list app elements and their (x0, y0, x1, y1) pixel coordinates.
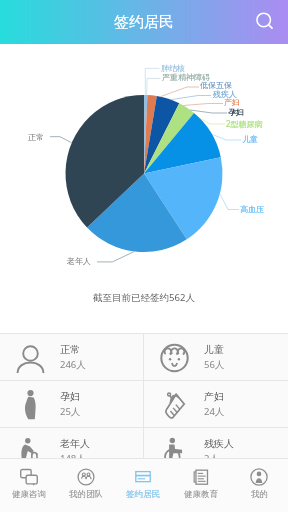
staticText: 低保五保 (200, 80, 232, 90)
staticText: 健康教育 (184, 489, 218, 500)
staticText: 24人 (204, 405, 225, 418)
staticText: 签约居民 (114, 13, 174, 32)
staticText: 健康咨询 (12, 489, 46, 500)
button[interactable]: 健康教育 (172, 459, 230, 512)
button[interactable]: 正常 (0, 334, 143, 380)
staticText: 老年人 (67, 256, 91, 266)
button[interactable]: 我的团队 (57, 459, 114, 512)
staticText: 正常 (60, 343, 80, 356)
button[interactable]: Search (252, 9, 278, 35)
button[interactable]: 签约居民 (114, 459, 172, 512)
staticText: 148人 (60, 452, 86, 458)
staticText: 高血压 (240, 204, 264, 214)
staticText: 老年人 (60, 437, 90, 450)
button[interactable]: 孕妇 (0, 381, 143, 427)
staticText: 246人 (60, 358, 86, 371)
staticText: 儿童 (204, 343, 224, 356)
staticText: 25人 (60, 405, 81, 418)
staticText: 我的团队 (69, 489, 103, 500)
staticText: 严重精神障碍 (162, 72, 210, 82)
staticText: 截至目前已经签约562人 (0, 291, 288, 304)
staticText: 2人 (204, 452, 219, 458)
staticText: 儿童 (242, 134, 258, 144)
staticText: 残疾人 (213, 89, 237, 99)
staticText: 肺结核 (161, 63, 185, 73)
staticText: 56人 (204, 358, 225, 371)
staticText: 正常 (28, 132, 44, 142)
staticText: 签约居民 (126, 489, 160, 500)
staticText: 孕妇 (228, 107, 244, 117)
staticText: 残疾人 (204, 437, 234, 450)
button[interactable]: 我的 (230, 459, 288, 512)
button[interactable]: 老年人 (0, 428, 143, 458)
button[interactable]: 儿童 (144, 334, 288, 380)
staticText: 产妇 (224, 97, 240, 107)
staticText: 孕妇 (60, 390, 80, 403)
staticText: 2型糖尿病 (226, 118, 263, 129)
button[interactable]: 产妇 (144, 381, 288, 427)
staticText: 产妇 (204, 390, 224, 403)
button[interactable]: 健康咨询 (0, 459, 57, 512)
staticText: 我的 (251, 489, 268, 500)
button[interactable]: 残疾人 (144, 428, 288, 458)
